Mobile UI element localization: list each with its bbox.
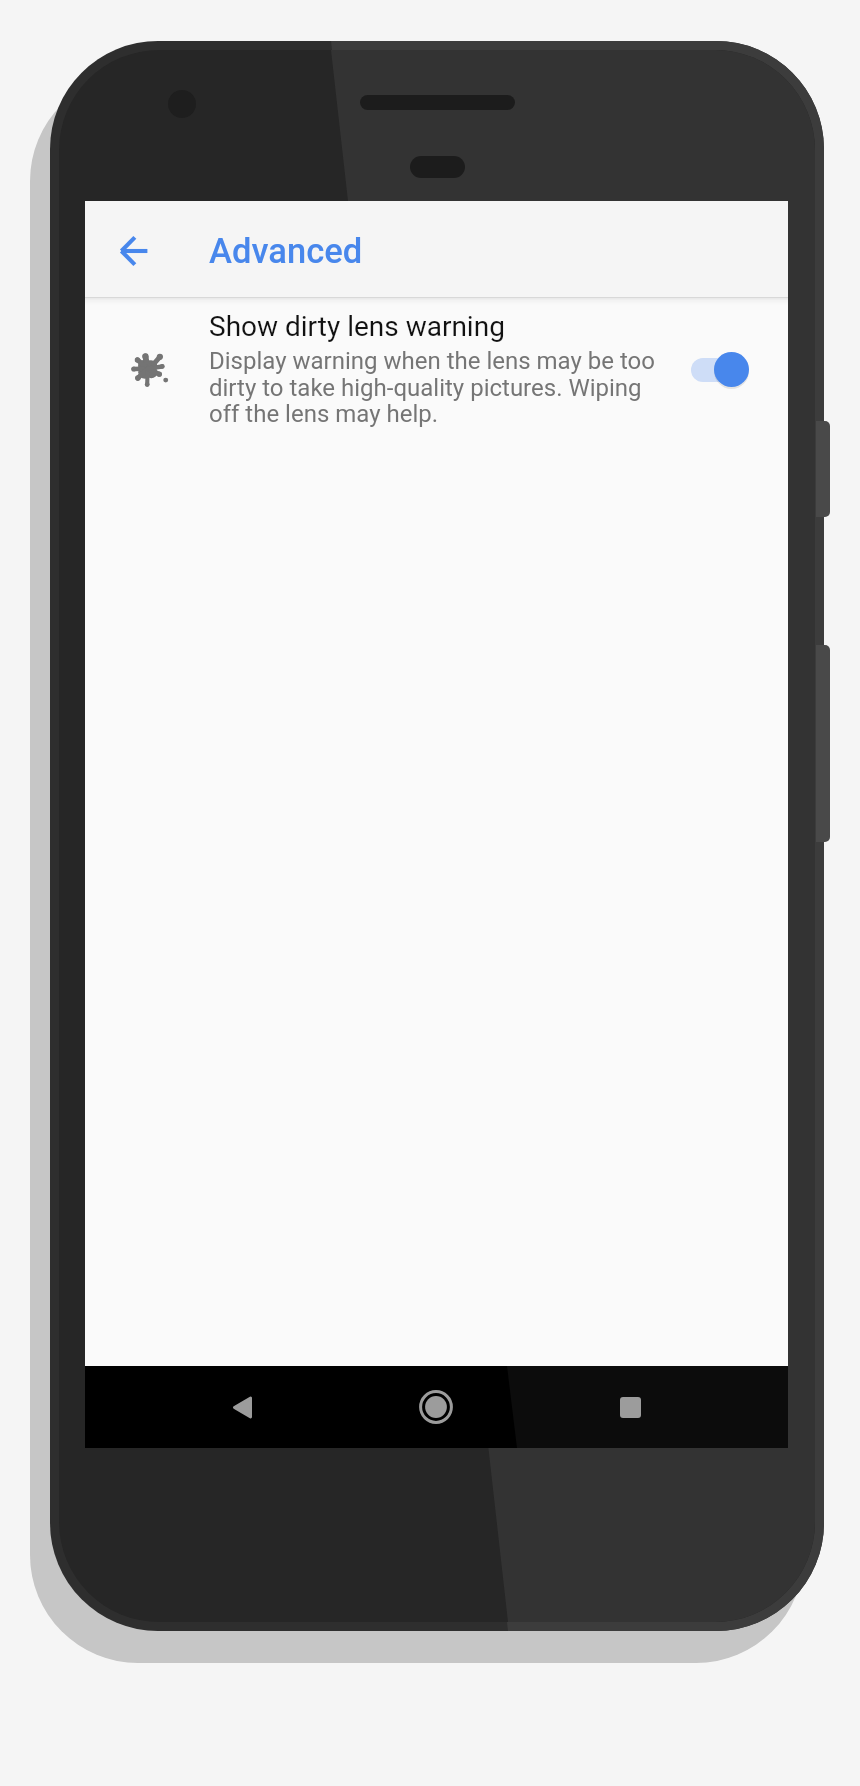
button[interactable]: Home: [396, 1366, 476, 1448]
staticText: Show dirty lens warning: [209, 310, 505, 343]
staticText: Display warning when the lens may be too…: [209, 347, 671, 427]
button[interactable]: Back: [202, 1366, 282, 1448]
button[interactable]: Show dirty lens warning: [85, 297, 788, 442]
staticText: Advanced: [209, 231, 363, 271]
button[interactable]: Navigate up: [96, 213, 172, 289]
button[interactable]: Show dirty lens warning toggle: [681, 342, 759, 398]
button[interactable]: Recent apps: [590, 1366, 670, 1448]
